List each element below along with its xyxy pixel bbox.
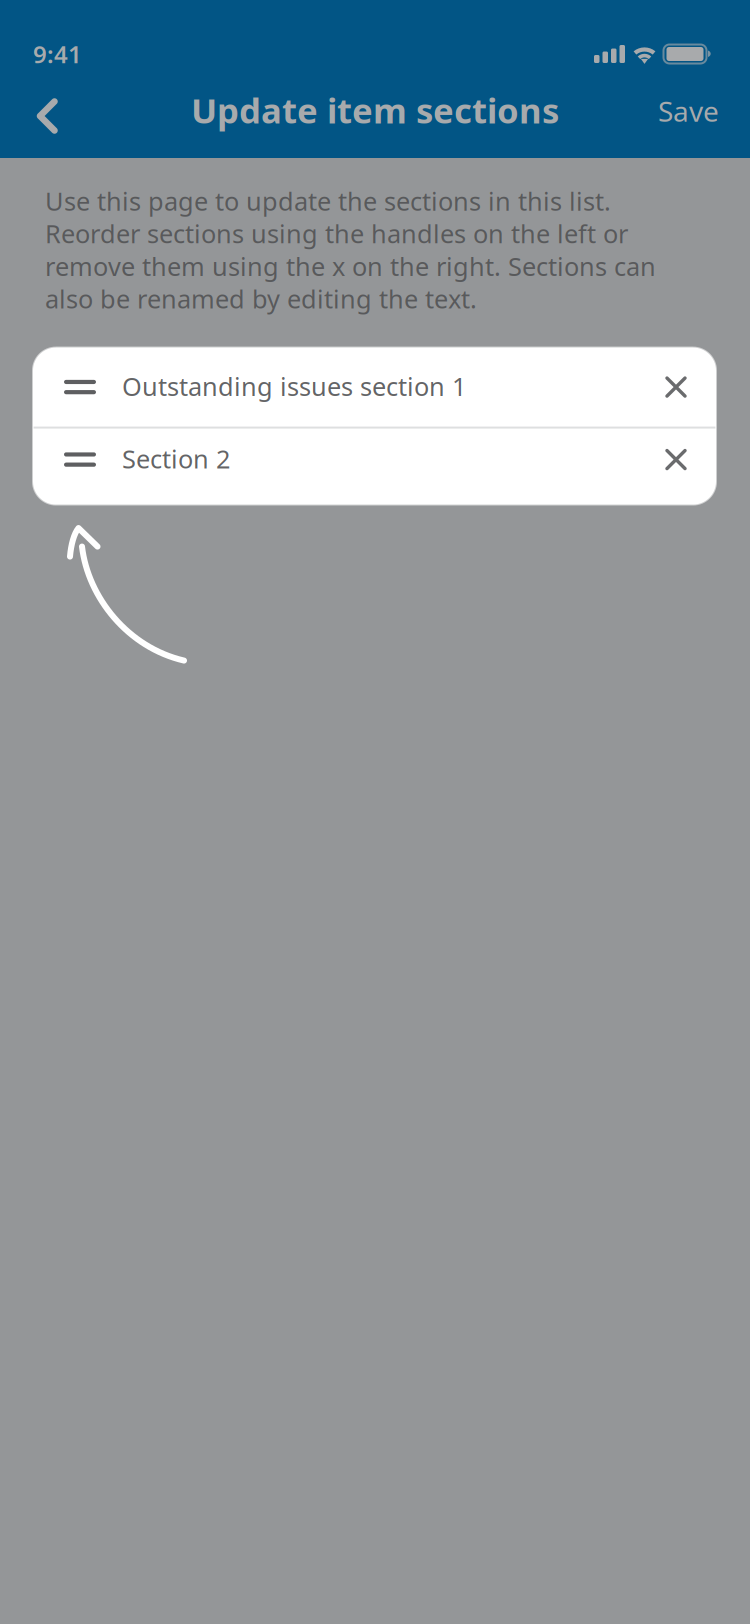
- staticText: remove them using the x on the right. Se…: [45, 249, 656, 283]
- button[interactable]: Remove Outstanding issues section 1: [644, 348, 708, 427]
- button[interactable]: Back: [0, 93, 81, 139]
- button[interactable]: Save: [634, 93, 750, 139]
- button[interactable]: Remove Section 2: [644, 422, 708, 498]
- staticText: Use this page to update the sections in …: [45, 184, 611, 218]
- staticText: Outstanding issues section 1: [122, 369, 466, 403]
- staticText: 9:41: [33, 38, 82, 70]
- staticText: Save: [658, 92, 719, 130]
- staticText: Update item sections: [191, 87, 559, 133]
- staticText: Section 2: [122, 442, 230, 475]
- staticText: also be renamed by editing the text.: [45, 282, 477, 315]
- staticText: Reorder sections using the handles on th…: [45, 217, 628, 250]
